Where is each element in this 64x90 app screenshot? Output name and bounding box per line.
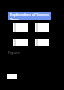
button[interactable]: Screenshot bbox=[13, 39, 28, 46]
button[interactable]: Exploration of Screen Type bbox=[8, 12, 51, 20]
button[interactable]: Screenshot bbox=[35, 39, 49, 46]
button[interactable]: Screenshot bbox=[35, 23, 49, 32]
button[interactable]: Screenshot bbox=[13, 23, 28, 32]
staticText: Figure bbox=[8, 50, 20, 55]
staticText: Exploration of Screen Type bbox=[10, 12, 51, 20]
